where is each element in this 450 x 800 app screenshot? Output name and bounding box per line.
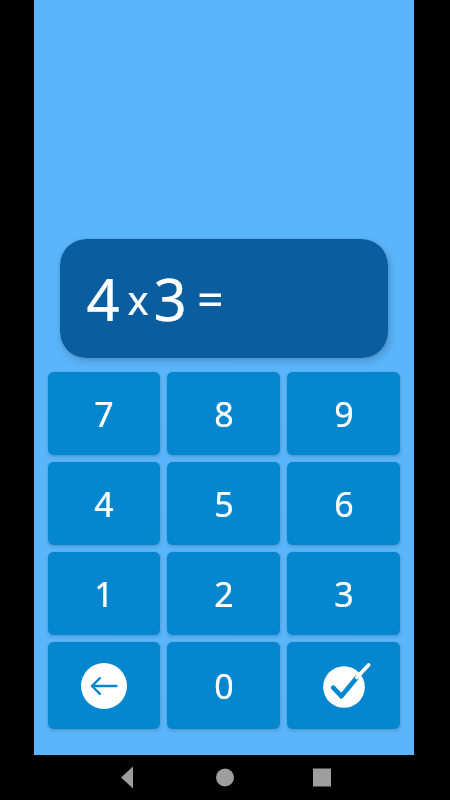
button[interactable]: Backspace	[48, 642, 160, 729]
staticText: 2	[214, 571, 234, 617]
staticText: 8	[214, 391, 234, 437]
staticText: 5	[214, 481, 234, 527]
staticText: x	[127, 272, 149, 326]
button[interactable]: 9	[287, 372, 400, 455]
button[interactable]: 4	[48, 462, 160, 545]
button[interactable]: 0	[167, 642, 280, 729]
button[interactable]: 3	[287, 552, 400, 635]
button[interactable]: Submit answer	[287, 642, 400, 729]
staticText: 4	[94, 481, 114, 527]
button[interactable]: 2	[167, 552, 280, 635]
staticText: 4	[86, 259, 120, 338]
staticText: 6	[334, 481, 354, 527]
button[interactable]: 6	[287, 462, 400, 545]
staticText: 3	[334, 571, 354, 617]
button[interactable]: 4	[60, 239, 388, 358]
button[interactable]: 8	[167, 372, 280, 455]
staticText: =	[197, 267, 224, 330]
staticText: 9	[334, 391, 354, 437]
staticText: 7	[94, 391, 114, 437]
button[interactable]: 5	[167, 462, 280, 545]
staticText: 0	[214, 663, 234, 709]
button[interactable]: 1	[48, 552, 160, 635]
staticText: 1	[94, 571, 114, 617]
button[interactable]: 7	[48, 372, 160, 455]
staticText: 3	[153, 259, 187, 338]
